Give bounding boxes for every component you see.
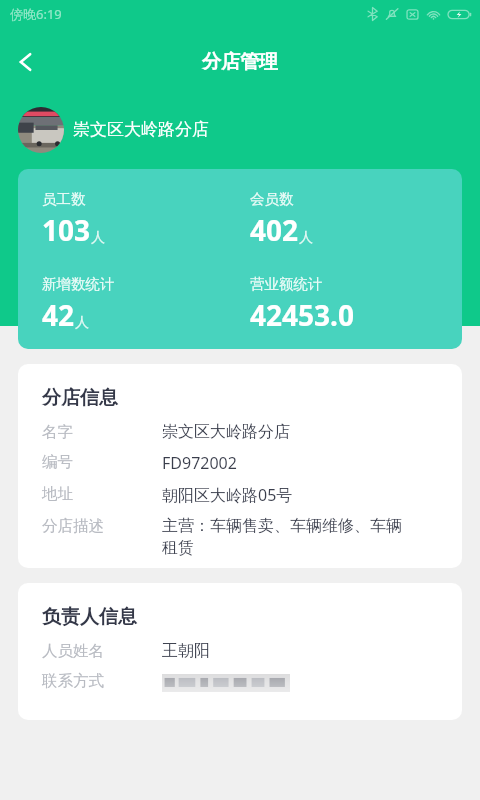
button[interactable]: Branch photo <box>0 95 480 164</box>
staticText: 朝阳区大岭路05号 <box>162 484 293 506</box>
staticText: 人 <box>299 229 313 247</box>
staticText: 分店信息 <box>42 386 118 410</box>
staticText: 103 <box>42 211 91 249</box>
button[interactable]: 负责人信息 <box>18 583 462 720</box>
staticText: 崇文区大岭路分店 <box>73 119 209 140</box>
staticText: 崇文区大岭路分店 <box>162 422 290 442</box>
staticText: 员工数 <box>42 190 86 208</box>
staticText: 王朝阳 <box>162 641 210 661</box>
staticText: 分店管理 <box>202 50 278 74</box>
staticText: 42 <box>42 296 75 334</box>
staticText: 主营：车辆售卖、车辆维修、车辆 租赁 <box>162 516 402 558</box>
staticText: 傍晚6:19 <box>10 5 62 23</box>
staticText: FD972002 <box>162 452 237 474</box>
staticText: 负责人信息 <box>42 605 137 629</box>
button[interactable]: 分店信息 <box>18 364 462 568</box>
staticText: 营业额统计 <box>250 275 323 293</box>
staticText: 联系方式 <box>42 671 162 691</box>
staticText: 新增数统计 <box>42 275 115 293</box>
staticText: 402 <box>250 211 299 249</box>
staticText: 42453.0 <box>250 296 354 334</box>
staticText: 人员姓名 <box>42 641 162 661</box>
staticText: 人 <box>91 229 105 247</box>
staticText: 会员数 <box>250 190 294 208</box>
button[interactable]: 员工数 <box>18 169 462 349</box>
staticText: 名字 <box>42 422 162 442</box>
staticText: 分店描述 <box>42 516 162 536</box>
staticText: 地址 <box>42 484 162 504</box>
staticText: 人 <box>75 314 89 332</box>
button[interactable]: Branch photo <box>18 107 64 153</box>
button[interactable]: Back <box>0 36 52 88</box>
staticText: 编号 <box>42 452 162 472</box>
